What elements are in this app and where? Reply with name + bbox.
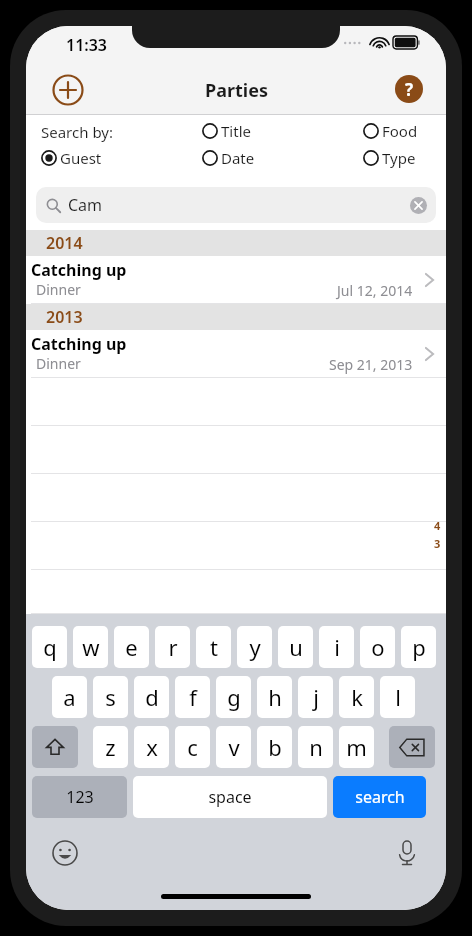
- button[interactable]: k: [339, 676, 374, 718]
- button[interactable]: Backspace: [389, 726, 435, 768]
- staticText: Search by:: [41, 122, 113, 142]
- staticText: z: [105, 732, 116, 762]
- button[interactable]: i: [319, 626, 354, 668]
- staticText: 4: [434, 518, 441, 533]
- button[interactable]: Emoji: [48, 836, 82, 870]
- staticText: i: [334, 632, 340, 662]
- staticText: 123: [66, 786, 94, 808]
- staticText: Title: [221, 121, 251, 141]
- staticText: Guest: [60, 148, 102, 168]
- button[interactable]: a: [52, 676, 87, 718]
- staticText: s: [105, 682, 116, 712]
- staticText: e: [125, 632, 138, 662]
- button[interactable]: u: [278, 626, 313, 668]
- staticText: Cam: [68, 194, 103, 216]
- staticText: Parties: [205, 78, 268, 103]
- button[interactable]: 123: [32, 776, 127, 818]
- staticText: x: [146, 732, 158, 762]
- button[interactable]: e: [114, 626, 149, 668]
- staticText: Type: [382, 148, 416, 168]
- button[interactable]: v: [216, 726, 251, 768]
- staticText: r: [168, 632, 178, 662]
- button[interactable]: Catching up: [26, 256, 446, 304]
- staticText: f: [189, 682, 197, 712]
- button[interactable]: l: [380, 676, 415, 718]
- button[interactable]: f: [175, 676, 210, 718]
- staticText: Dinner: [36, 354, 81, 373]
- button[interactable]: Add party: [50, 72, 86, 108]
- button[interactable]: q: [32, 626, 67, 668]
- staticText: a: [63, 682, 76, 712]
- staticText: y: [249, 632, 261, 662]
- staticText: Jul 12, 2014: [337, 281, 413, 300]
- button[interactable]: h: [257, 676, 292, 718]
- staticText: space: [208, 786, 252, 808]
- button[interactable]: space: [133, 776, 327, 818]
- staticText: ?: [405, 78, 414, 101]
- staticText: o: [371, 632, 385, 662]
- staticText: u: [289, 632, 303, 662]
- staticText: d: [145, 682, 159, 712]
- staticText: l: [395, 682, 401, 712]
- staticText: k: [351, 682, 363, 712]
- staticText: c: [187, 732, 198, 762]
- button[interactable]: y: [237, 626, 272, 668]
- staticText: q: [43, 632, 57, 662]
- staticText: w: [82, 632, 100, 662]
- staticText: b: [268, 732, 282, 762]
- staticText: Date: [221, 148, 255, 168]
- staticText: 3: [434, 536, 441, 551]
- staticText: j: [313, 682, 319, 712]
- button[interactable]: Food: [363, 121, 418, 141]
- button[interactable]: j: [298, 676, 333, 718]
- button[interactable]: n: [298, 726, 333, 768]
- button[interactable]: Title: [202, 121, 251, 141]
- staticText: m: [346, 732, 367, 762]
- staticText: h: [268, 682, 282, 712]
- staticText: Catching up: [31, 333, 127, 355]
- staticText: g: [227, 682, 241, 712]
- button[interactable]: w: [73, 626, 108, 668]
- staticText: 11:33: [66, 34, 108, 56]
- staticText: Dinner: [36, 280, 81, 299]
- button[interactable]: Clear search: [408, 195, 428, 215]
- staticText: search: [355, 786, 405, 808]
- button[interactable]: Date: [202, 148, 255, 168]
- button[interactable]: search: [333, 776, 426, 818]
- button[interactable]: Type: [363, 148, 416, 168]
- staticText: v: [228, 732, 240, 762]
- staticText: 2013: [46, 306, 83, 328]
- button[interactable]: z: [93, 726, 128, 768]
- button[interactable]: p: [401, 626, 436, 668]
- button[interactable]: g: [216, 676, 251, 718]
- staticText: t: [210, 632, 218, 662]
- button[interactable]: Cam: [36, 187, 436, 223]
- staticText: Food: [382, 121, 418, 141]
- button[interactable]: m: [339, 726, 374, 768]
- button[interactable]: Help: [394, 74, 424, 104]
- button[interactable]: d: [134, 676, 169, 718]
- button[interactable]: Guest: [41, 148, 102, 168]
- staticText: 2014: [46, 232, 83, 254]
- button[interactable]: Shift: [32, 726, 78, 768]
- button[interactable]: r: [155, 626, 190, 668]
- button[interactable]: Catching up: [26, 330, 446, 378]
- button[interactable]: c: [175, 726, 210, 768]
- button[interactable]: s: [93, 676, 128, 718]
- button[interactable]: Dictation: [390, 836, 424, 870]
- button[interactable]: o: [360, 626, 395, 668]
- staticText: n: [309, 732, 323, 762]
- button[interactable]: b: [257, 726, 292, 768]
- staticText: p: [412, 632, 426, 662]
- button[interactable]: x: [134, 726, 169, 768]
- button[interactable]: t: [196, 626, 231, 668]
- staticText: Sep 21, 2013: [329, 355, 413, 374]
- staticText: Catching up: [31, 259, 127, 281]
